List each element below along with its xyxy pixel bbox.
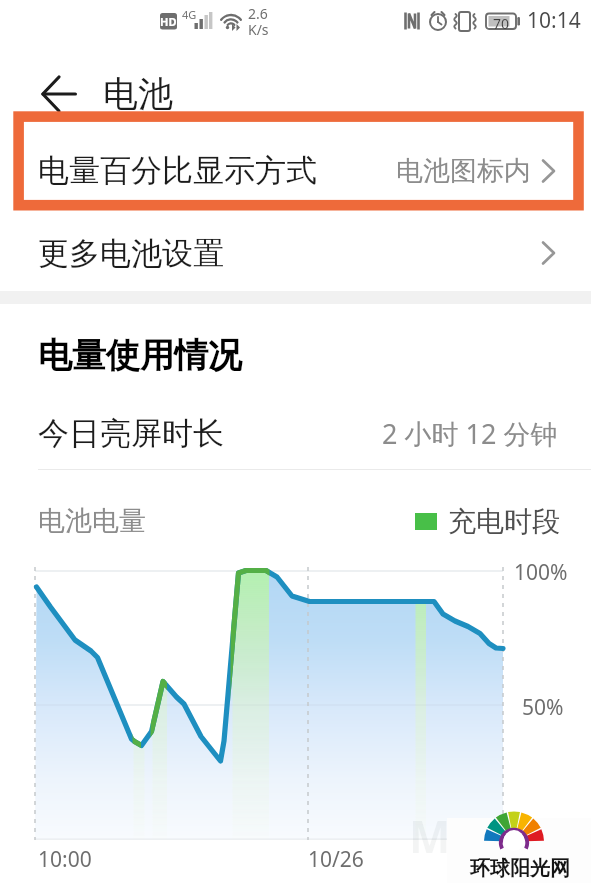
staticText: HD	[160, 14, 177, 29]
button[interactable]: Back	[41, 74, 81, 114]
staticText: 10:14	[527, 6, 581, 35]
staticText: 电量百分比显示方式	[38, 151, 317, 190]
staticText: 4G	[182, 7, 197, 22]
staticText: 10:00	[38, 845, 92, 874]
staticText: 更多电池设置	[38, 234, 224, 273]
staticText: 电池图标内	[396, 154, 531, 188]
staticText: 100%	[514, 558, 568, 587]
staticText: 2 小时 12 分钟	[382, 415, 558, 452]
staticText: M	[409, 806, 451, 866]
staticText: 70	[493, 14, 510, 29]
staticText: 10/26	[308, 845, 364, 874]
staticText: 今日亮屏时长	[38, 414, 224, 453]
staticText: 电量使用情况	[38, 334, 242, 377]
staticText: 电池电量	[38, 504, 146, 538]
button[interactable]: 更多电池设置	[0, 213, 591, 293]
staticText: 50%	[522, 693, 564, 722]
staticText: 2.6 K/s	[248, 4, 269, 39]
staticText: 充电时段	[448, 504, 560, 539]
staticText: 电池	[103, 72, 173, 116]
staticText: 环球阳光网	[470, 856, 570, 881]
button[interactable]: 电量百分比显示方式	[0, 128, 591, 213]
